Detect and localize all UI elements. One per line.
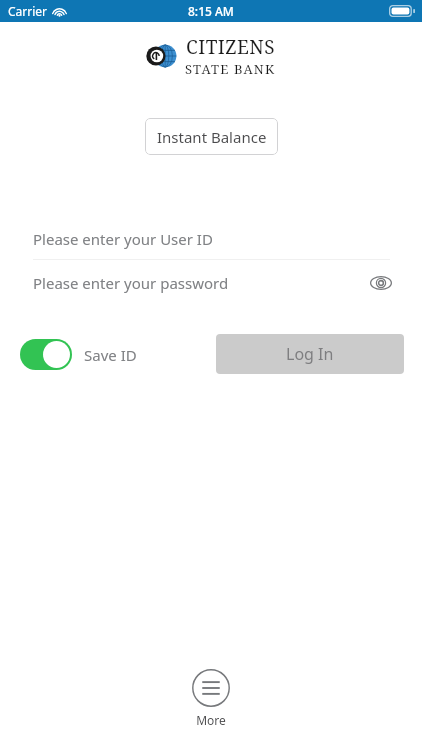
- button[interactable]: Please enter your password: [0, 260, 422, 306]
- staticText: Save ID: [84, 345, 137, 365]
- button[interactable]: Save ID toggle, on: [20, 339, 137, 370]
- staticText: 8:15 AM: [188, 3, 234, 19]
- staticText: Please enter your User ID: [33, 229, 213, 249]
- staticText: Carrier: [8, 3, 48, 19]
- button[interactable]: Instant Balance: [145, 118, 278, 155]
- other: Save ID toggle, on: [20, 339, 72, 370]
- staticText: STATE BANK: [185, 60, 276, 78]
- staticText: Log In: [286, 343, 334, 365]
- button[interactable]: Please enter your User ID: [0, 219, 422, 259]
- staticText: More: [196, 712, 226, 728]
- button[interactable]: More: [188, 665, 234, 732]
- button[interactable]: Log In: [216, 334, 404, 374]
- button[interactable]: Show password: [366, 268, 396, 298]
- staticText: Instant Balance: [157, 127, 267, 147]
- staticText: Please enter your password: [33, 273, 229, 293]
- staticText: CITIZENS: [186, 34, 276, 60]
